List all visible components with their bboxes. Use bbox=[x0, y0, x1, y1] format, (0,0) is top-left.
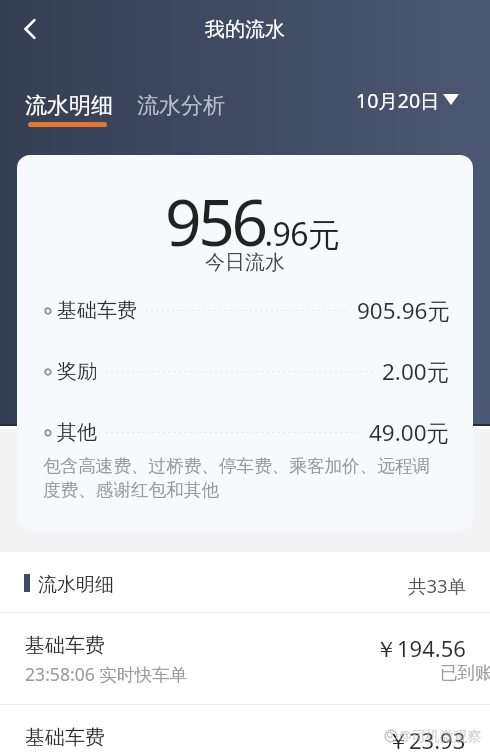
button[interactable]: 流水明细 bbox=[25, 92, 113, 120]
staticText: 流水明细 bbox=[25, 92, 113, 120]
staticText: 其他 bbox=[57, 420, 97, 445]
staticText: 流水分析 bbox=[137, 92, 225, 120]
button[interactable]: 基础车费 bbox=[0, 705, 490, 752]
staticText: 基础车费 bbox=[25, 633, 105, 658]
staticText: ￥23.93 bbox=[387, 725, 466, 752]
staticText: ￥194.56 bbox=[375, 633, 466, 663]
staticText: 49.00元 bbox=[369, 417, 450, 448]
staticText: 905.96元 bbox=[357, 295, 450, 326]
staticText: 23:58:06 实时快车单 bbox=[25, 662, 188, 686]
button[interactable]: 基础车费 bbox=[0, 613, 490, 704]
staticText: 956.96元 bbox=[165, 178, 340, 265]
staticText: 基础车费 bbox=[25, 725, 105, 750]
staticText: 今日流水 bbox=[205, 250, 285, 275]
staticText: 2.00元 bbox=[382, 356, 450, 387]
button[interactable]: Back bbox=[8, 7, 52, 51]
staticText: 已到账 bbox=[440, 662, 490, 684]
staticText: @司机微观察 bbox=[399, 726, 482, 745]
button[interactable]: 流水明细 bbox=[0, 552, 490, 612]
staticText: 流水明细 bbox=[38, 573, 114, 597]
staticText: 包含高速费、过桥费、停车费、乘客加价、远程调 度费、感谢红包和其他 bbox=[43, 455, 431, 501]
staticText: 我的流水 bbox=[205, 17, 285, 42]
button[interactable]: 流水分析 bbox=[137, 92, 225, 120]
staticText: 基础车费 bbox=[57, 298, 137, 323]
staticText: 共33单 bbox=[408, 573, 467, 598]
staticText: 10月20日 bbox=[356, 87, 440, 114]
staticText: 奖励 bbox=[57, 359, 97, 384]
button[interactable]: 10月20日 bbox=[350, 85, 470, 125]
